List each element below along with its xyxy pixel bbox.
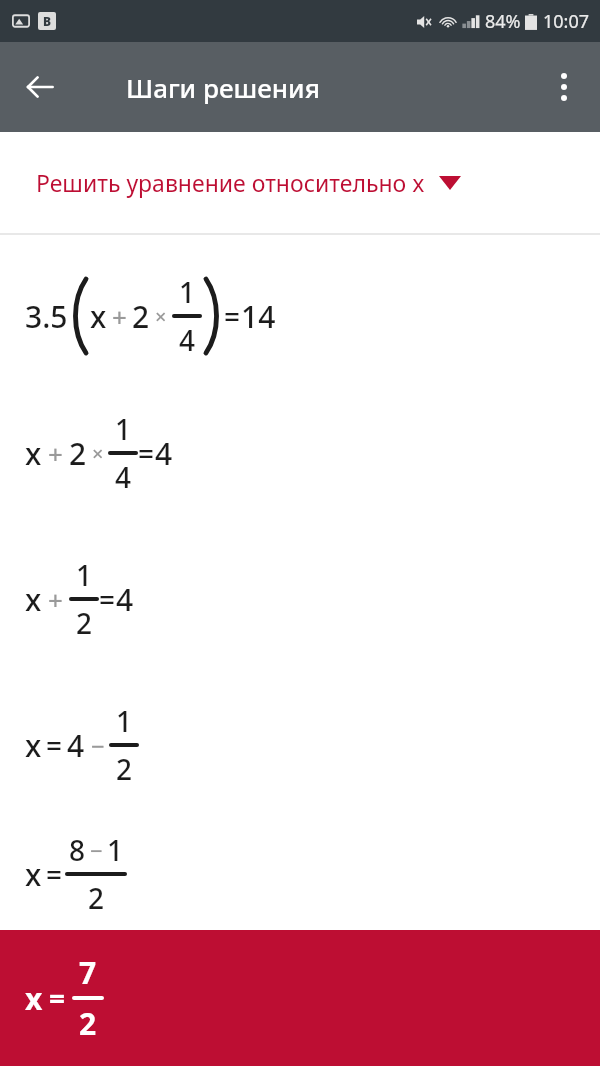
staticText: 1 [179,273,196,311]
staticText: 14 [241,296,276,337]
staticText: = [99,580,116,618]
staticText: 4 [67,725,85,766]
staticText: 2 [132,296,150,337]
staticText: − [91,729,105,762]
staticText: x [25,978,43,1019]
staticText: = [49,979,66,1017]
staticText: 1 [76,556,93,594]
button[interactable]: 3.5 [25,273,276,359]
button[interactable]: x [25,410,173,496]
staticText: + [48,436,63,471]
staticText: 2 [88,879,105,917]
staticText: 2 [79,1003,97,1044]
staticText: 3.5 [25,296,68,337]
staticText: x [25,854,42,895]
staticText: + [48,582,63,617]
staticText: 84% [485,9,521,34]
staticText: B [43,13,52,29]
staticText: − [90,835,103,865]
button[interactable]: x [25,556,134,642]
staticText: 4 [116,579,134,620]
staticText: x [90,296,107,337]
staticText: = [138,434,155,472]
button[interactable]: Back [12,59,68,115]
staticText: x [25,433,42,474]
staticText: = [224,297,241,335]
button[interactable]: Решить уравнение относительно x [0,132,600,233]
button[interactable]: More options [538,61,590,113]
button[interactable]: x [0,930,600,1066]
staticText: 1 [115,410,132,448]
staticText: 2 [69,433,87,474]
staticText: 4 [179,321,196,359]
staticText: × [155,303,167,330]
staticText: 2 [76,604,93,642]
staticText: × [92,440,104,467]
staticText: 8 [69,831,86,869]
staticText: = [46,726,63,764]
staticText: 2 [116,750,133,788]
staticText: = [46,855,63,893]
staticText: Шаги решения [126,70,320,105]
staticText: 1 [116,702,133,740]
staticText: 7 [79,952,97,993]
staticText: 10:07 [543,9,590,34]
staticText: x [25,725,42,766]
button[interactable]: x [25,831,127,917]
staticText: + [112,299,127,334]
button[interactable]: x [25,702,139,788]
staticText: Решить уравнение относительно x [36,167,425,198]
staticText: 4 [115,458,132,496]
staticText: 1 [107,831,124,869]
staticText: x [25,579,42,620]
staticText: 4 [155,433,173,474]
